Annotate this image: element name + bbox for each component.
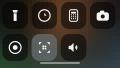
- button[interactable]: Sound Recognition: [61, 34, 86, 61]
- button[interactable]: Flashlight: [2, 2, 28, 29]
- button[interactable]: Calculator: [61, 2, 86, 29]
- button[interactable]: Code Scanner: [32, 34, 57, 61]
- button[interactable]: Camera: [90, 2, 115, 29]
- button[interactable]: Screen Recording: [2, 34, 28, 61]
- button[interactable]: Timer: [32, 2, 57, 29]
